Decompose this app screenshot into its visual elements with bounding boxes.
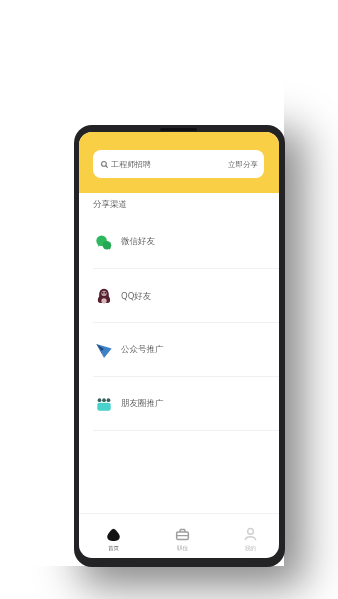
button[interactable]: QQ好友 (79, 269, 279, 323)
button[interactable]: 公众号推广 (79, 323, 279, 377)
staticText: 立即分享 (228, 160, 258, 169)
staticText: 首页 (108, 545, 119, 552)
staticText: 职位 (177, 545, 188, 552)
staticText: 朋友圈推广 (121, 398, 164, 409)
staticText: 我的 (245, 545, 256, 552)
staticText: 工程师招聘 (111, 159, 151, 169)
button[interactable]: 我的 (226, 514, 274, 558)
staticText: 公众号推广 (121, 344, 164, 355)
staticText: 分享渠道 (93, 199, 127, 210)
button[interactable]: 工程师招聘 (93, 150, 264, 178)
button[interactable]: 职位 (158, 514, 206, 558)
button[interactable]: 微信好友 (79, 215, 279, 269)
staticText: 微信好友 (121, 236, 155, 247)
button[interactable]: 朋友圈推广 (79, 377, 279, 431)
staticText: QQ好友 (121, 290, 152, 302)
button[interactable]: 首页 (89, 514, 137, 558)
